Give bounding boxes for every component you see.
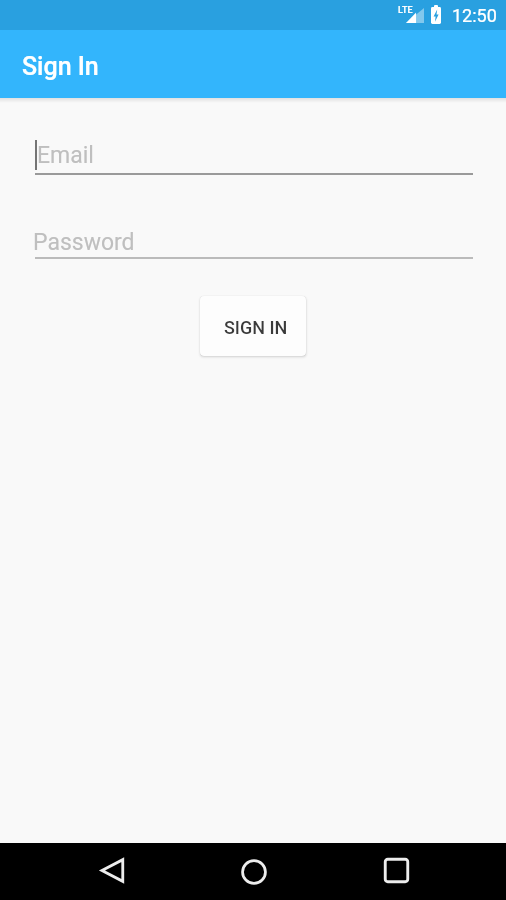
staticText: Password — [33, 229, 135, 256]
button[interactable]: Email — [35, 141, 473, 175]
button[interactable]: Recent apps — [375, 848, 417, 893]
button[interactable]: Password — [35, 229, 473, 259]
button[interactable]: Back — [91, 848, 133, 893]
button[interactable]: SIGN IN — [200, 296, 306, 356]
staticText: 12:50 — [452, 5, 497, 26]
staticText: LTE — [398, 5, 413, 16]
button[interactable]: Home — [233, 849, 275, 894]
staticText: Sign In — [22, 52, 99, 81]
staticText: Email — [37, 142, 94, 169]
staticText: SIGN IN — [224, 317, 288, 338]
